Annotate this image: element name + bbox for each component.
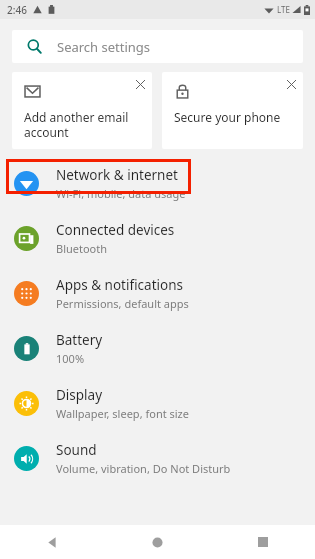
staticText: Wallpaper, sleep, font size bbox=[56, 406, 189, 421]
staticText: 2:46 bbox=[7, 3, 27, 17]
staticText: Display bbox=[56, 386, 103, 404]
staticText: Secure your phone bbox=[174, 109, 281, 125]
button[interactable]: Display bbox=[0, 376, 315, 431]
button[interactable]: Sound bbox=[0, 431, 315, 486]
staticText: Wi-Fi, mobile, data usage bbox=[56, 186, 186, 201]
button[interactable]: Connected devices bbox=[0, 211, 315, 266]
button[interactable]: Battery bbox=[0, 321, 315, 376]
staticText: Connected devices bbox=[56, 221, 175, 239]
staticText: Volume, vibration, Do Not Disturb bbox=[56, 461, 231, 476]
staticText: Add another email account bbox=[24, 109, 129, 140]
button[interactable]: Search bbox=[12, 30, 303, 63]
button[interactable]: Network & internet bbox=[0, 156, 315, 211]
button[interactable]: Secure your phone bbox=[162, 72, 303, 149]
button[interactable]: Dismiss bbox=[279, 72, 303, 96]
button[interactable]: Add another email account bbox=[12, 72, 152, 149]
staticText: Bluetooth bbox=[56, 241, 108, 256]
other: Search bbox=[27, 39, 42, 54]
staticText: Network & internet bbox=[56, 166, 178, 184]
button[interactable]: Apps & notifications bbox=[0, 266, 315, 321]
button[interactable]: Dismiss bbox=[128, 72, 152, 96]
staticText: Search settings bbox=[57, 38, 151, 56]
staticText: Sound bbox=[56, 441, 97, 459]
staticText: 100% bbox=[56, 351, 85, 366]
staticText: Permissions, default apps bbox=[56, 296, 189, 311]
button[interactable]: Recent apps bbox=[210, 525, 315, 559]
button[interactable]: Home bbox=[105, 525, 210, 559]
staticText: Battery bbox=[56, 331, 103, 349]
button[interactable]: Back bbox=[0, 525, 105, 559]
staticText: LTE bbox=[277, 4, 290, 15]
staticText: Apps & notifications bbox=[56, 276, 183, 294]
